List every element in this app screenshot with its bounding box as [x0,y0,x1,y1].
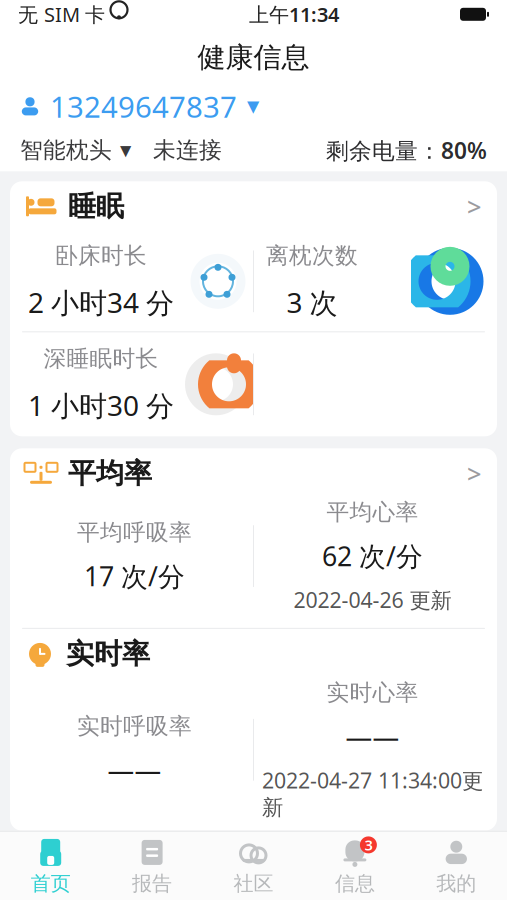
button[interactable]: 智能枕头 [20,136,131,164]
staticText: 睡眠 [68,189,124,223]
staticText: > [467,456,481,490]
staticText: 首页 [31,871,71,896]
staticText: 信息 [335,871,375,896]
staticText: 报告 [132,871,172,896]
staticText: 未连接 [153,136,222,164]
staticText: —— [345,719,399,754]
staticText: 平均率 [68,456,152,490]
button[interactable]: 平均率 [10,448,497,498]
staticText: 无 SIM 卡 [18,1,105,28]
staticText: 深睡眠时长 [43,345,158,373]
button[interactable]: 睡眠 [10,181,497,231]
button[interactable]: 3 [304,831,406,900]
button[interactable]: 我的 [406,831,507,900]
staticText: 2022-04-27 11:34:00更新 [262,766,483,821]
staticText: 社区 [233,871,273,896]
staticText: 剩余电量：80% [326,135,487,165]
button[interactable]: 社区 [203,831,304,900]
staticText: > [467,189,481,223]
staticText: 实时呼吸率 [77,712,192,740]
staticText: 实时率 [66,637,150,671]
staticText: 智能枕头 [20,136,112,164]
staticText: 3 [364,835,372,855]
staticText: 3 次 [286,284,337,321]
staticText: —— [107,752,161,787]
button[interactable]: 实时率 [10,629,497,679]
staticText: 卧床时长 [55,242,147,270]
staticText: 1 小时30 分 [28,387,174,424]
staticText: 2 小时34 分 [28,284,174,321]
staticText: 62 次/分 [322,538,423,574]
staticText: 2022-04-26 更新 [293,586,451,614]
staticText: 上午11:34 [249,1,339,28]
staticText: 我的 [436,871,476,896]
staticText: ▼ [247,97,259,115]
staticText: 17 次/分 [84,558,185,594]
staticText: ▼ [120,142,131,159]
staticText: 健康信息 [197,40,309,74]
staticText: 离枕次数 [266,242,358,270]
button[interactable]: 13249647837 [0,83,507,129]
button[interactable]: 首页 [0,831,101,900]
button[interactable]: 报告 [101,831,203,900]
staticText: 平均心率 [326,498,418,526]
staticText: 平均呼吸率 [77,518,192,546]
staticText: 13249647837 [50,87,237,126]
staticText: 实时心率 [326,679,418,707]
